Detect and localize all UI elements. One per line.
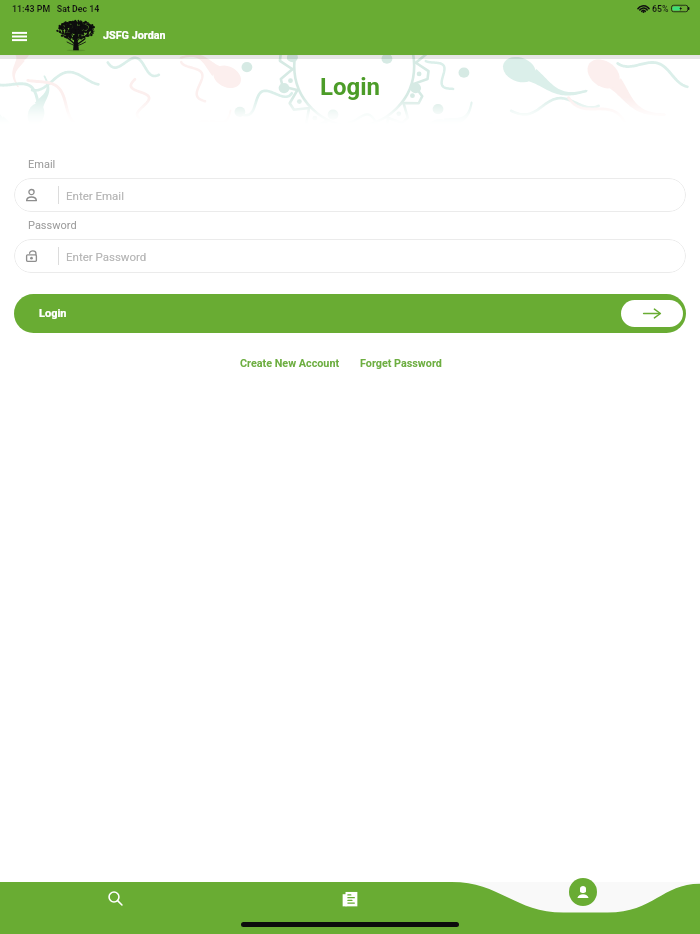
staticText: Login <box>320 73 381 101</box>
staticText: 11:43 PM Sat Dec 14 <box>12 4 100 14</box>
staticText: Login <box>39 307 67 320</box>
staticText: Enter Email <box>66 189 124 202</box>
staticText: 65% <box>652 4 669 14</box>
staticText: Password <box>28 219 77 232</box>
staticText: Forget Password <box>360 357 442 370</box>
staticText: Email <box>28 158 56 171</box>
staticText: JSFG Jordan <box>103 29 166 42</box>
button[interactable]: Create New Account <box>240 357 340 370</box>
button[interactable]: Profile <box>569 878 597 906</box>
button[interactable]: Enter Email <box>14 178 686 212</box>
button[interactable]: Search <box>100 883 131 914</box>
button[interactable]: Open navigation menu <box>0 19 39 53</box>
staticText: Create New Account <box>240 357 340 370</box>
button[interactable]: Forget Password <box>360 357 442 370</box>
button[interactable]: Login <box>14 294 686 333</box>
staticText: Enter Password <box>66 250 147 263</box>
button[interactable]: Articles <box>334 883 365 914</box>
button[interactable]: Enter Password <box>14 239 686 273</box>
